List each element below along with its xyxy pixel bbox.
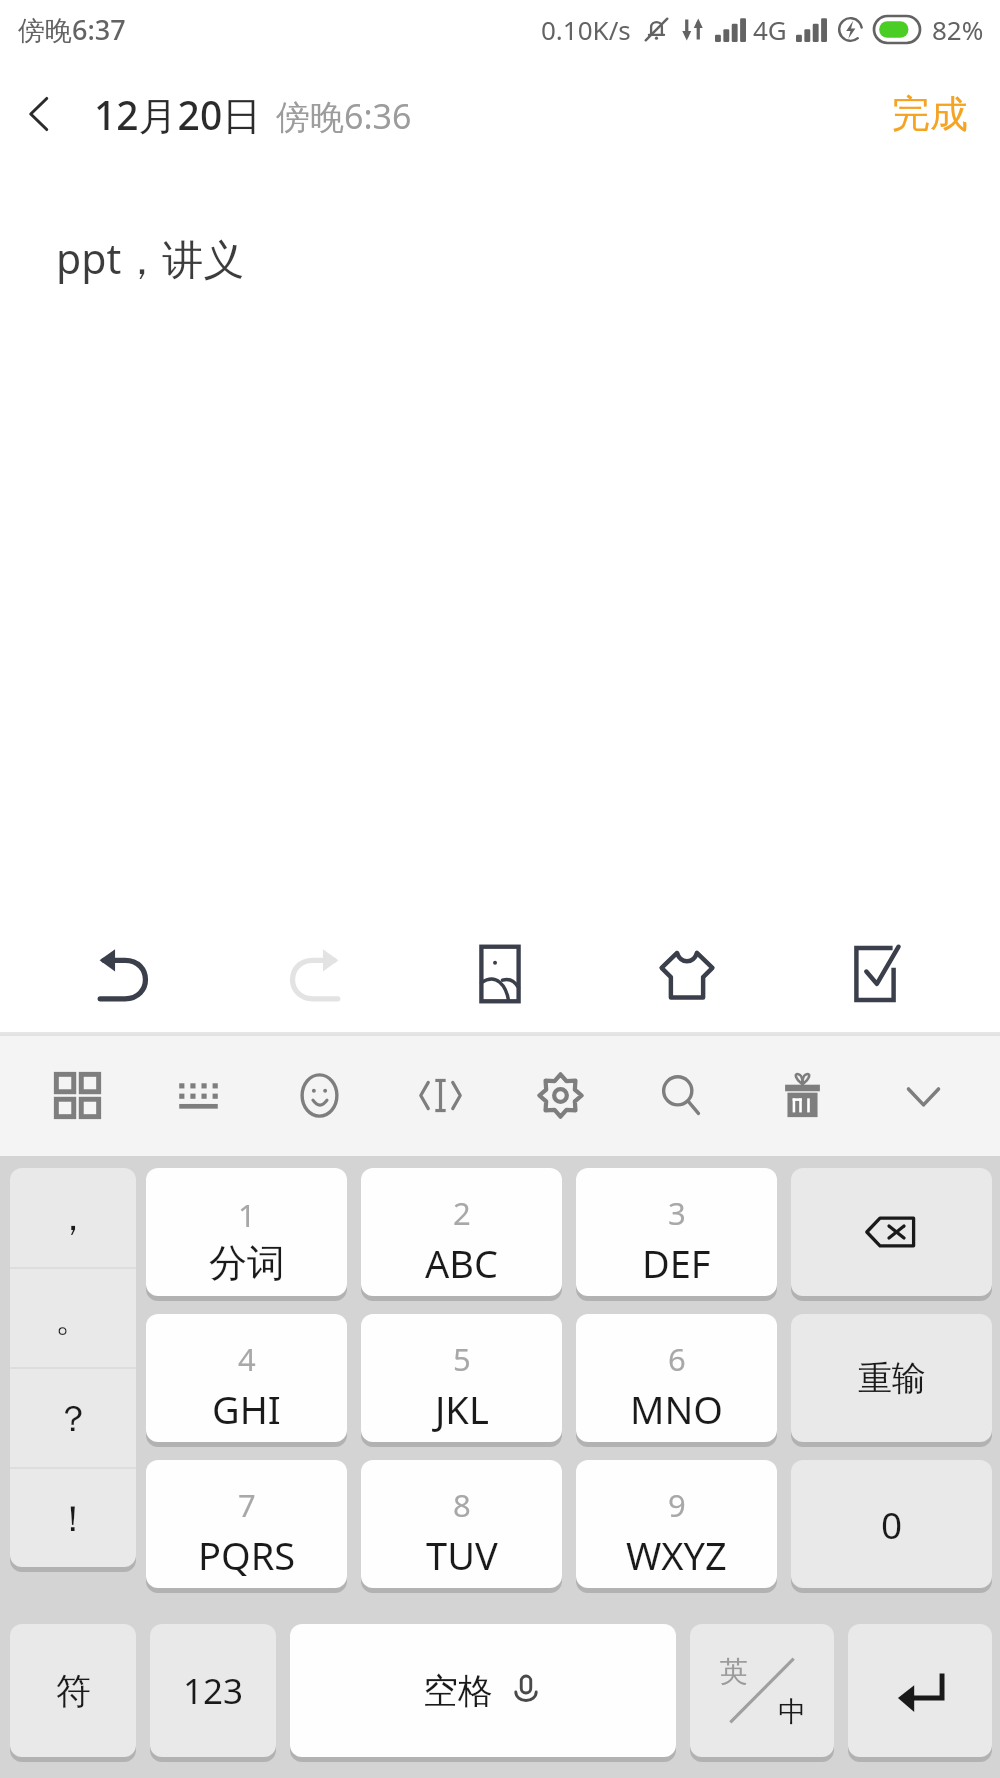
button[interactable]: Mi gift <box>750 1035 854 1155</box>
staticText: 中 <box>778 1694 806 1729</box>
button[interactable]: Punctuation ！ <box>10 1469 136 1567</box>
staticText: TUV <box>426 1529 498 1581</box>
button[interactable]: Checklist <box>813 918 937 1030</box>
staticText: JKL <box>435 1383 489 1435</box>
button[interactable]: Punctuation ？ <box>10 1369 136 1467</box>
button[interactable]: Numbers <box>150 1624 276 1762</box>
button[interactable]: 4 <box>146 1314 347 1447</box>
button[interactable]: Search <box>629 1035 733 1155</box>
button[interactable]: Hide keyboard <box>871 1035 975 1155</box>
button[interactable]: Space <box>290 1624 676 1762</box>
staticText: 82% <box>932 12 984 47</box>
staticText: ppt，讲义 <box>56 230 245 286</box>
staticText: GHI <box>212 1383 281 1435</box>
staticText: 6 <box>668 1338 686 1380</box>
staticText: DEF <box>642 1237 711 1289</box>
staticText: PQRS <box>198 1529 296 1581</box>
staticText: 重输 <box>858 1357 926 1400</box>
staticText: 7 <box>238 1484 256 1526</box>
button[interactable]: Keyboard layout <box>146 1035 250 1155</box>
staticText: ？ <box>55 1396 91 1441</box>
staticText: 傍晚6:36 <box>276 93 412 139</box>
staticText: ！ <box>55 1496 91 1541</box>
staticText: 12月20日 <box>94 88 262 141</box>
button[interactable]: 5 <box>361 1314 562 1447</box>
button[interactable]: Enter <box>848 1624 992 1762</box>
button[interactable]: Apps <box>25 1035 129 1155</box>
button[interactable]: Switch language <box>690 1624 834 1762</box>
button[interactable]: Back <box>0 64 80 164</box>
button[interactable]: Insert image <box>438 918 562 1030</box>
staticText: 。 <box>55 1296 91 1341</box>
staticText: 5 <box>453 1338 471 1380</box>
staticText: 0 <box>881 1499 903 1549</box>
staticText: 英 <box>720 1654 748 1689</box>
staticText: 123 <box>183 1667 244 1715</box>
staticText: 完成 <box>892 90 968 138</box>
staticText: 空格 <box>423 1669 493 1713</box>
staticText: 3 <box>668 1192 686 1234</box>
staticText: WXYZ <box>626 1529 727 1581</box>
button[interactable]: Settings <box>508 1035 612 1155</box>
button[interactable]: 8 <box>361 1460 562 1593</box>
button[interactable]: Theme <box>625 918 749 1030</box>
staticText: 9 <box>668 1484 686 1526</box>
staticText: 分词 <box>209 1239 285 1287</box>
button[interactable]: 完成 <box>860 72 1000 156</box>
staticText: MNO <box>630 1383 724 1435</box>
staticText: 0.10K/s <box>541 12 631 47</box>
button[interactable]: 1 <box>146 1168 347 1301</box>
staticText: 符 <box>56 1669 91 1713</box>
button[interactable]: Backspace <box>791 1168 992 1301</box>
staticText: 4 <box>238 1338 256 1380</box>
button[interactable]: Emoji <box>267 1035 371 1155</box>
button[interactable]: 7 <box>146 1460 347 1593</box>
button[interactable]: Re-enter <box>791 1314 992 1447</box>
staticText: 1 <box>238 1194 256 1236</box>
button[interactable]: 6 <box>576 1314 777 1447</box>
staticText: ， <box>55 1195 91 1240</box>
staticText: ABC <box>425 1237 498 1289</box>
staticText: 2 <box>453 1192 471 1234</box>
button[interactable]: Punctuation ， <box>10 1168 136 1267</box>
button[interactable]: Undo <box>63 918 187 1030</box>
staticText: 8 <box>453 1484 471 1526</box>
button[interactable]: 3 <box>576 1168 777 1301</box>
button[interactable]: 2 <box>361 1168 562 1301</box>
button[interactable]: Zero <box>791 1460 992 1593</box>
button[interactable]: Move cursor <box>388 1035 492 1155</box>
button[interactable]: Redo <box>251 918 375 1030</box>
button[interactable]: Punctuation 。 <box>10 1269 136 1367</box>
button[interactable]: 9 <box>576 1460 777 1593</box>
button[interactable]: Symbols <box>10 1624 136 1762</box>
staticText: 傍晚6:37 <box>18 11 126 48</box>
staticText: 4G <box>753 12 787 47</box>
